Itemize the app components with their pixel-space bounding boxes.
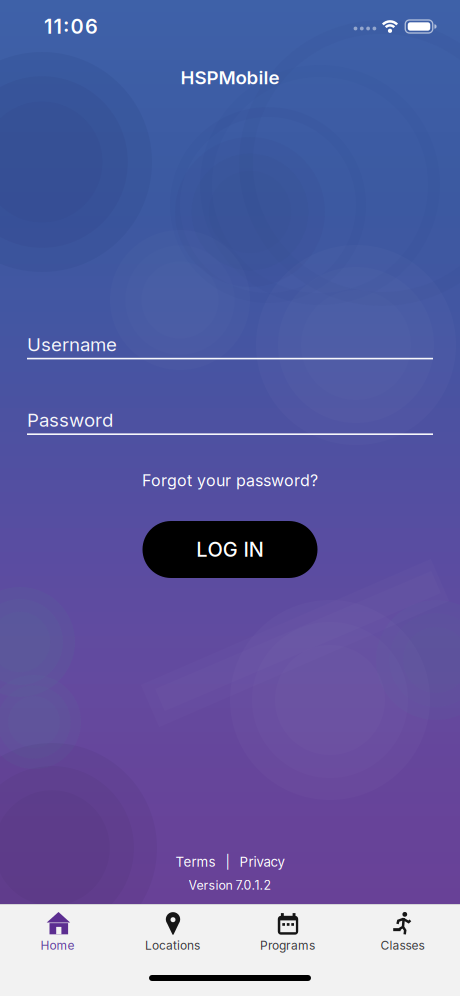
staticText: Version 7.0.1.2: [188, 878, 271, 893]
staticText: Locations: [145, 938, 200, 952]
staticText: Home: [40, 938, 74, 952]
button[interactable]: Programs: [230, 904, 344, 992]
button[interactable]: Forgot your password?: [142, 471, 318, 490]
staticText: HSPMobile: [180, 66, 279, 88]
staticText: LOG IN: [196, 538, 264, 561]
staticText: Terms: [175, 854, 215, 870]
staticText: Classes: [380, 938, 424, 952]
button[interactable]: Password: [27, 408, 433, 435]
staticText: Username: [27, 333, 117, 355]
staticText: Password: [27, 409, 113, 431]
staticText: Programs: [260, 938, 315, 952]
button[interactable]: Privacy: [239, 854, 284, 870]
staticText: |: [225, 854, 229, 870]
button[interactable]: Classes: [345, 904, 459, 992]
staticText: Forgot your password?: [142, 471, 318, 490]
button[interactable]: Home: [0, 904, 114, 992]
staticText: 11:06: [44, 15, 98, 38]
button[interactable]: LOG IN: [142, 521, 317, 578]
staticText: Privacy: [239, 854, 284, 870]
button[interactable]: Terms: [175, 854, 215, 870]
button[interactable]: Locations: [115, 904, 229, 992]
button[interactable]: Username: [27, 332, 433, 359]
